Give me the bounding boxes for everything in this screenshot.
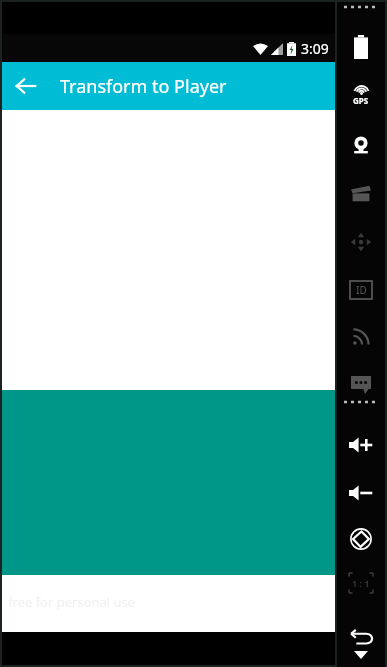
other: D-pad (350, 233, 372, 251)
button[interactable]: Actual size (337, 568, 385, 598)
other: Power (354, 35, 368, 59)
button[interactable]: Device ID (337, 275, 385, 305)
button[interactable]: GPS (337, 80, 385, 110)
other: Back (15, 75, 37, 97)
other: Camera (351, 135, 371, 155)
button[interactable]: Rotate (337, 524, 385, 554)
button[interactable]: D-pad (337, 227, 385, 257)
other: GPS (353, 85, 369, 106)
button[interactable]: Volume up (337, 430, 385, 460)
button[interactable]: Volume down (337, 478, 385, 508)
other: Record screen (351, 184, 371, 202)
other: Cellular (352, 328, 370, 346)
button[interactable]: Power (337, 32, 385, 62)
staticText: 3:09 (301, 39, 329, 58)
button[interactable]: Messages (337, 370, 385, 400)
staticText: free for personal use (8, 593, 136, 611)
staticText: ID (356, 283, 367, 297)
other: Volume down (349, 484, 373, 502)
other: Back (348, 628, 374, 646)
other: Actual size (348, 572, 374, 594)
staticText: 1 : 1 (352, 577, 370, 589)
button[interactable]: Record screen (337, 178, 385, 208)
button[interactable]: Camera (337, 130, 385, 160)
button[interactable]: Cellular (337, 322, 385, 352)
other: Messages (351, 376, 371, 394)
staticText: Transform to Player (60, 74, 227, 99)
button[interactable]: Back (337, 622, 385, 652)
staticText: GPS (353, 95, 369, 106)
other: Device ID (350, 281, 372, 299)
other: Rotate (350, 528, 372, 550)
other: Volume up (349, 436, 373, 454)
button[interactable]: Navigate up (2, 62, 50, 110)
